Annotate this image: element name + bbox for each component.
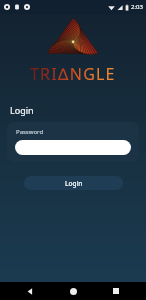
button[interactable]: Login xyxy=(24,176,123,190)
staticText: 2:03 xyxy=(131,3,143,11)
button[interactable]: Recent apps xyxy=(103,282,129,300)
button[interactable]: Password field xyxy=(15,140,131,155)
button[interactable]: Back xyxy=(17,282,43,300)
staticText: Login xyxy=(10,104,34,116)
button[interactable]: Home xyxy=(60,282,86,300)
staticText: Password xyxy=(16,128,44,136)
staticText: Login xyxy=(65,179,83,188)
staticText: TRI∆NGLE xyxy=(30,63,116,85)
